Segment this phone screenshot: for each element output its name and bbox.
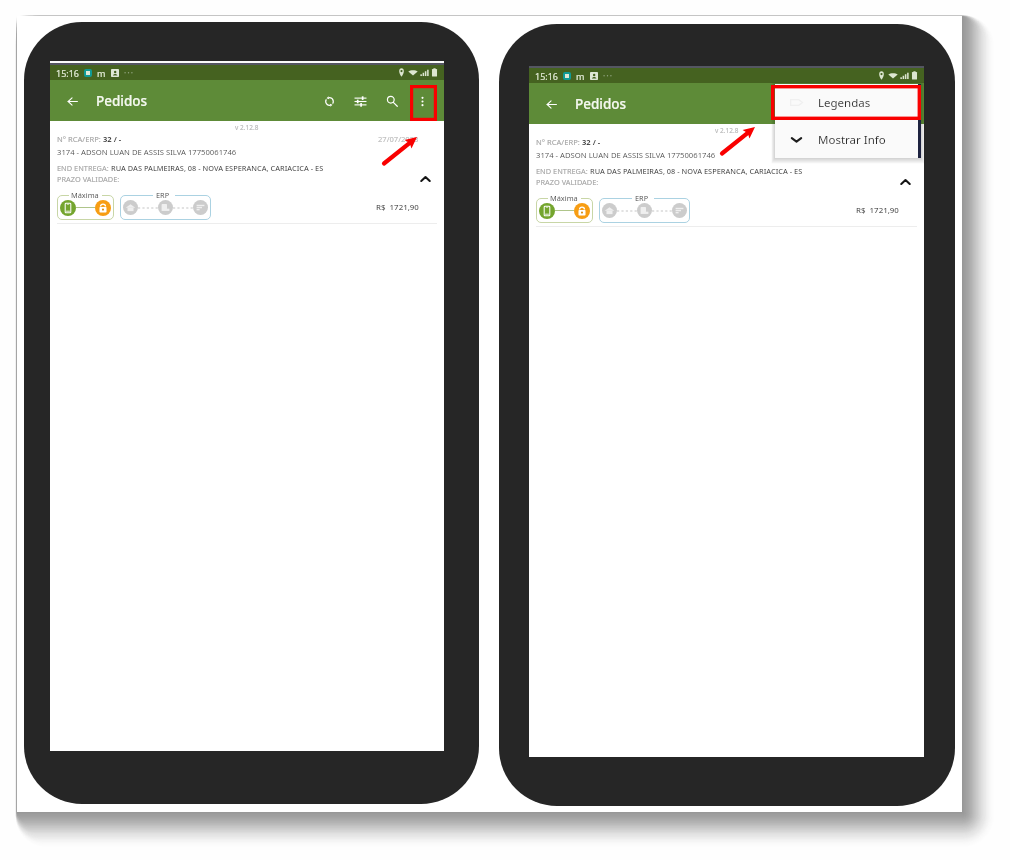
staticText: END ENTREGA: <box>57 163 111 173</box>
button[interactable]: Legendas <box>775 84 921 121</box>
staticText: Pedidos <box>575 95 627 113</box>
staticText: 3174 - ADSON LUAN DE ASSIS SILVA 1775006… <box>536 150 716 160</box>
button[interactable]: Mostrar Info <box>775 121 921 158</box>
staticText: Máxima <box>71 190 99 200</box>
staticText: RUA DAS PALMEIRAS, 08 - NOVA ESPERANCA, … <box>590 166 803 176</box>
staticText: m <box>576 70 585 82</box>
button[interactable]: Collapse <box>415 169 435 189</box>
button[interactable]: Back <box>537 87 565 121</box>
staticText: 27/07/2023 <box>858 137 899 147</box>
button[interactable]: Filter <box>345 84 376 118</box>
staticText: Máxima <box>550 193 578 203</box>
staticText: Mostrar Info <box>818 132 886 148</box>
staticText: m <box>97 67 106 79</box>
staticText: ERP <box>156 190 170 200</box>
button[interactable]: Search <box>856 87 887 121</box>
button[interactable]: Search <box>376 84 407 118</box>
button[interactable]: More options <box>887 87 918 121</box>
button[interactable]: More options <box>407 84 438 118</box>
staticText: N° RCA/ERP: <box>536 137 582 147</box>
staticText: 3174 - ADSON LUAN DE ASSIS SILVA 1775006… <box>57 147 237 157</box>
button[interactable]: Refresh <box>314 84 345 118</box>
staticText: v 2.12.8 <box>235 123 259 132</box>
staticText: Legendas <box>818 95 871 111</box>
staticText: 32 / - <box>103 134 122 144</box>
staticText: v 2.12.8 <box>715 126 739 135</box>
button[interactable]: Back <box>58 84 86 118</box>
staticText: END ENTREGA: <box>536 166 590 176</box>
staticText: 27/07/2023 <box>378 134 419 144</box>
staticText: R$ 1721,90 <box>856 205 899 216</box>
staticText: R$ 1721,90 <box>376 202 419 213</box>
button[interactable]: Refresh <box>794 87 825 121</box>
staticText: N° RCA/ERP: <box>57 134 103 144</box>
staticText: RUA DAS PALMEIRAS, 08 - NOVA ESPERANCA, … <box>111 163 324 173</box>
staticText: PRAZO VALIDADE: <box>536 177 599 187</box>
button[interactable]: Collapse <box>895 172 915 192</box>
staticText: 15:16 <box>56 67 80 79</box>
button[interactable]: Filter <box>825 87 856 121</box>
staticText: ERP <box>635 193 649 203</box>
staticText: Pedidos <box>96 92 148 110</box>
staticText: 15:16 <box>535 70 559 82</box>
staticText: 32 / - <box>582 137 601 147</box>
staticText: PRAZO VALIDADE: <box>57 174 120 184</box>
